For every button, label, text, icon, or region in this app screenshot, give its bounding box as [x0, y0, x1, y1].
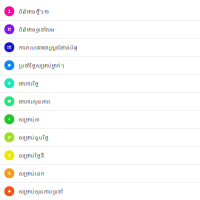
staticText: ប្រចាំថ្ងៃសម្រាប់ម្នាក់ៗ — [19, 61, 64, 69]
staticText: សម្រាប់ថ្ងៃទី — [19, 151, 44, 159]
button[interactable]: សម្រាប់ថ្ងៃទី — [0, 146, 200, 164]
staticText: សម្រាប់ខួបថ្ងៃ — [19, 133, 49, 141]
staticText: សម្រាប់សុខភាពទូទៅ — [19, 187, 63, 195]
button[interactable]: អាហារសុខភាព — [0, 92, 200, 110]
staticText: អាហារថ្ងៃ — [19, 79, 39, 87]
staticText: ការគណនាសាស្ត្រសំខាន់បំផុ — [19, 43, 78, 51]
button[interactable]: សម្រាប់៣ — [0, 110, 200, 128]
staticText: សម្រាប់៣ — [19, 115, 40, 123]
button[interactable]: សម្រាប់ដេក — [0, 164, 200, 182]
staticText: ព័ត៌មានទូទៅសម — [19, 25, 55, 33]
button[interactable]: ព័ត៌មានថ្មីៗ-២ — [0, 2, 200, 20]
button[interactable]: ព័ត៌មានទូទៅសម — [0, 20, 200, 38]
button[interactable]: ប្រចាំថ្ងៃសម្រាប់ម្នាក់ៗ — [0, 56, 200, 74]
staticText: សម្រាប់ដេក — [19, 169, 45, 177]
staticText: ព័ត៌មានថ្មីៗ-២ — [19, 7, 49, 15]
button[interactable]: អាហារថ្ងៃ — [0, 74, 200, 92]
button[interactable]: សម្រាប់ខួបថ្ងៃ — [0, 128, 200, 146]
button[interactable]: ការគណនាសាស្ត្រសំខាន់បំផុ — [0, 38, 200, 56]
button[interactable]: សម្រាប់សុខភាពទូទៅ — [0, 182, 200, 200]
staticText: អាហារសុខភាព — [19, 97, 51, 105]
